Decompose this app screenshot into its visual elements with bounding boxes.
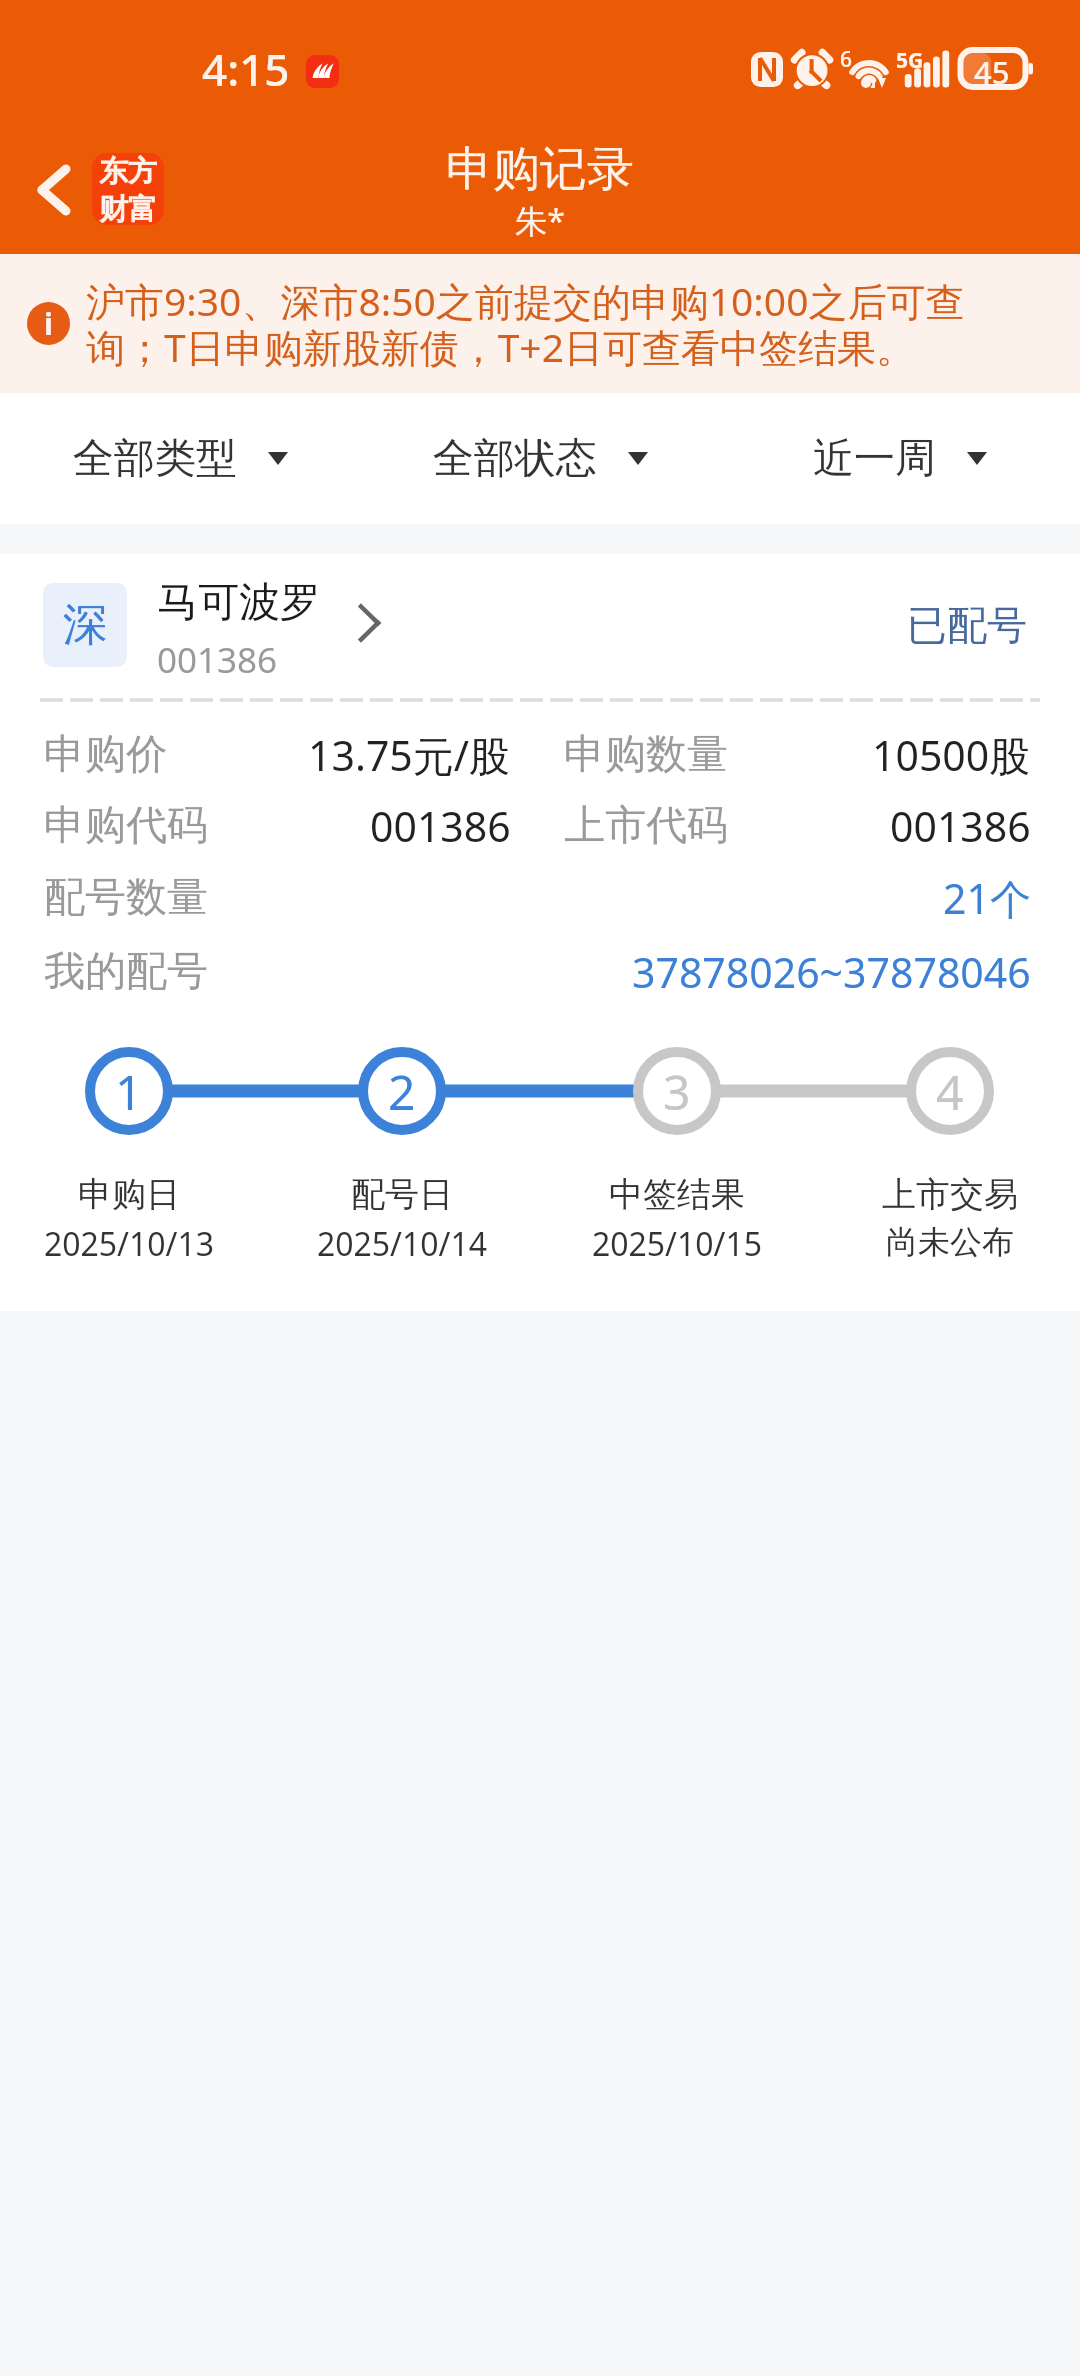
- staticText: 我的配号: [44, 946, 208, 998]
- staticText: 上市代码: [564, 800, 728, 852]
- button[interactable]: 深: [0, 574, 1080, 694]
- staticText: 001386: [370, 798, 511, 854]
- staticText: 配号数量: [44, 872, 208, 924]
- staticText: 001386: [157, 636, 278, 684]
- button[interactable]: East Money home: [92, 153, 164, 225]
- staticText: 申购价: [44, 729, 167, 781]
- staticText: 3: [663, 1059, 691, 1124]
- staticText: 申购日: [0, 1173, 279, 1216]
- staticText: 配号日: [252, 1173, 552, 1216]
- button[interactable]: 全部类型: [0, 393, 360, 524]
- staticText: 2025/10/14: [252, 1222, 552, 1266]
- staticText: 东方: [99, 153, 157, 190]
- staticText: 5G: [896, 46, 924, 75]
- staticText: 2025/10/13: [0, 1222, 279, 1266]
- staticText: 上市交易: [800, 1173, 1080, 1216]
- button[interactable]: Back: [14, 150, 94, 230]
- staticText: 37878026~37878046: [632, 944, 1031, 1000]
- staticText: 深: [63, 597, 108, 654]
- staticText: 2: [388, 1059, 416, 1124]
- staticText: 申购数量: [564, 729, 728, 781]
- staticText: 申购代码: [44, 800, 208, 852]
- staticText: 已配号: [0, 600, 1027, 650]
- staticText: 001386: [890, 798, 1031, 854]
- staticText: 中签结果: [527, 1173, 827, 1216]
- staticText: 6: [840, 45, 853, 74]
- staticText: 10500股: [872, 727, 1031, 783]
- staticText: 朱*: [0, 199, 1080, 243]
- button[interactable]: 近一周: [720, 393, 1080, 524]
- staticText: 4:15: [202, 39, 290, 99]
- staticText: 全部类型: [73, 433, 237, 485]
- staticText: 21个: [943, 870, 1031, 926]
- staticText: 4: [936, 1059, 964, 1124]
- button[interactable]: 全部状态: [360, 393, 720, 524]
- staticText: 1: [115, 1059, 143, 1124]
- staticText: 45: [974, 51, 1010, 93]
- staticText: 全部状态: [433, 433, 597, 485]
- staticText: 近一周: [813, 433, 936, 485]
- staticText: 13.75元/股: [308, 727, 511, 783]
- staticText: 财富: [99, 191, 157, 225]
- staticText: 尚未公布: [800, 1222, 1080, 1262]
- staticText: 申购记录: [0, 140, 1080, 199]
- staticText: 马可波罗: [157, 577, 321, 629]
- staticText: 沪市9:30、深市8:50之前提交的申购10:00之后可查询；T日申购新股新债，…: [86, 274, 994, 374]
- staticText: 2025/10/15: [527, 1222, 827, 1266]
- staticText: i: [44, 303, 53, 344]
